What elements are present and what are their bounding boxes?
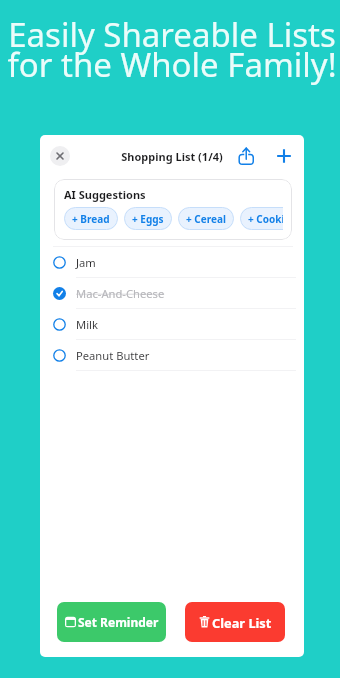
button[interactable]: Mac-And-Cheese	[40, 278, 304, 308]
button[interactable]: + Eggs	[124, 207, 172, 230]
staticText: Peanut Butter	[76, 348, 150, 363]
button[interactable]: Jam	[40, 247, 304, 277]
button[interactable]: + Cookies	[240, 207, 283, 230]
staticText: Set Reminder	[78, 614, 159, 630]
staticText: + Eggs	[132, 212, 164, 226]
staticText: Milk	[76, 317, 98, 332]
staticText: + Bread	[72, 212, 110, 226]
staticText: Clear List	[212, 614, 272, 631]
button[interactable]: Close	[50, 146, 70, 166]
staticText: Mac-And-Cheese	[76, 286, 165, 301]
staticText: + Cookies	[248, 212, 283, 226]
button[interactable]: Peanut Butter	[40, 340, 304, 370]
button[interactable]: + Cereal	[178, 207, 234, 230]
staticText: Jam	[76, 255, 96, 270]
button[interactable]: Milk	[40, 309, 304, 339]
staticText: Shopping List (1/4)	[40, 149, 304, 164]
button[interactable]: + Bread	[64, 207, 118, 230]
button[interactable]: Clear List	[185, 602, 285, 642]
staticText: + Cereal	[186, 212, 226, 226]
staticText: AI Suggestions	[64, 187, 146, 202]
staticText: Easily Shareable Lists for the Whole Fam…	[2, 12, 340, 86]
button[interactable]: Add item	[275, 147, 293, 165]
button[interactable]: Share	[236, 144, 258, 168]
button[interactable]: Set Reminder	[57, 602, 166, 642]
